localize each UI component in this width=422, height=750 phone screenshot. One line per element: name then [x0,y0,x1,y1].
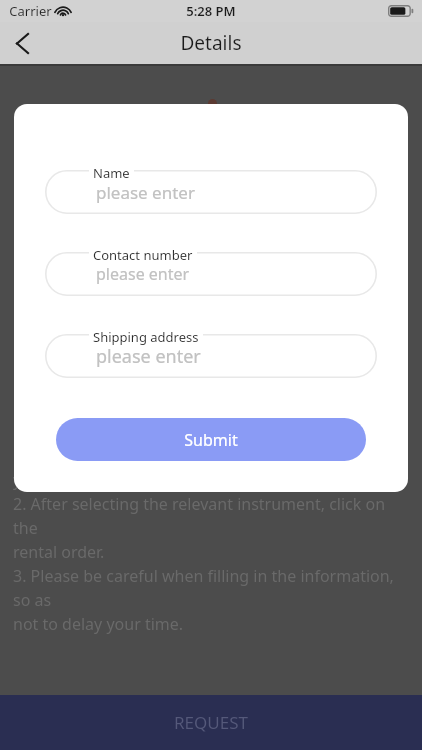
button[interactable]: REQUEST [0,695,422,750]
staticText: 3. Please be careful when filling in the… [13,565,409,611]
button[interactable]: please enter [45,322,377,378]
staticText: REQUEST [174,711,248,734]
staticText: Submit [184,429,238,451]
staticText: please enter [96,181,195,204]
staticText: Carrier [9,2,52,20]
button[interactable]: please enter [45,240,377,296]
staticText: please enter [96,344,201,369]
staticText: Name [93,164,130,182]
staticText: 2. After selecting the relevant instrume… [13,493,409,539]
staticText: 5:28 PM [186,2,236,20]
button[interactable]: please enter [45,158,377,214]
staticText: please enter [96,263,190,285]
staticText: your rental needs. [13,469,150,491]
button[interactable]: Submit [56,418,366,461]
staticText: Shipping address [93,328,199,346]
staticText: Details [180,30,242,56]
staticText: rental order. [13,541,105,563]
staticText: Contact number [93,246,193,264]
button[interactable]: Back [0,22,44,64]
staticText: not to delay your time. [13,613,184,635]
